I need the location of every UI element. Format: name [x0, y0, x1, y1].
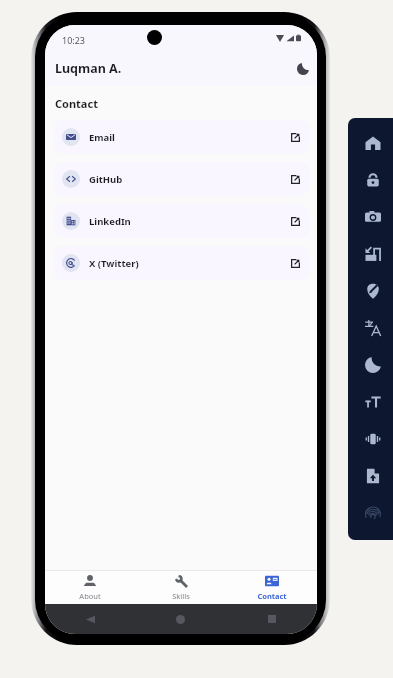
button[interactable]: Fingerprint: [354, 494, 391, 531]
button[interactable]: Dark mode: [354, 346, 391, 383]
button[interactable]: Power: [354, 161, 391, 198]
staticText: Contact: [257, 591, 287, 601]
button[interactable]: Vibrate: [354, 420, 391, 457]
button[interactable]: Font size: [354, 383, 391, 420]
button[interactable]: X (Twitter): [54, 246, 309, 280]
staticText: 10:23: [62, 34, 86, 46]
button[interactable]: Home: [354, 124, 391, 161]
button[interactable]: Contact: [226, 571, 317, 604]
button[interactable]: Screenshot: [354, 198, 391, 235]
button[interactable]: Toggle dark mode: [291, 57, 315, 81]
staticText: Contact: [55, 96, 98, 111]
staticText: About: [79, 591, 101, 601]
staticText: GitHub: [89, 173, 123, 186]
staticText: LinkedIn: [89, 215, 131, 228]
staticText: Email: [89, 131, 115, 144]
button[interactable]: Skills: [135, 571, 226, 604]
button[interactable]: Upload file: [354, 457, 391, 494]
button[interactable]: About: [45, 571, 135, 604]
button[interactable]: Language: [354, 309, 391, 346]
button[interactable]: GitHub: [54, 162, 309, 196]
button[interactable]: LinkedIn: [54, 204, 309, 238]
staticText: Luqman A.: [55, 60, 122, 77]
button[interactable]: Email: [54, 120, 309, 154]
staticText: Skills: [172, 591, 190, 601]
button[interactable]: Location: [354, 272, 391, 309]
staticText: X (Twitter): [89, 257, 139, 270]
button[interactable]: Rotate: [354, 235, 391, 272]
